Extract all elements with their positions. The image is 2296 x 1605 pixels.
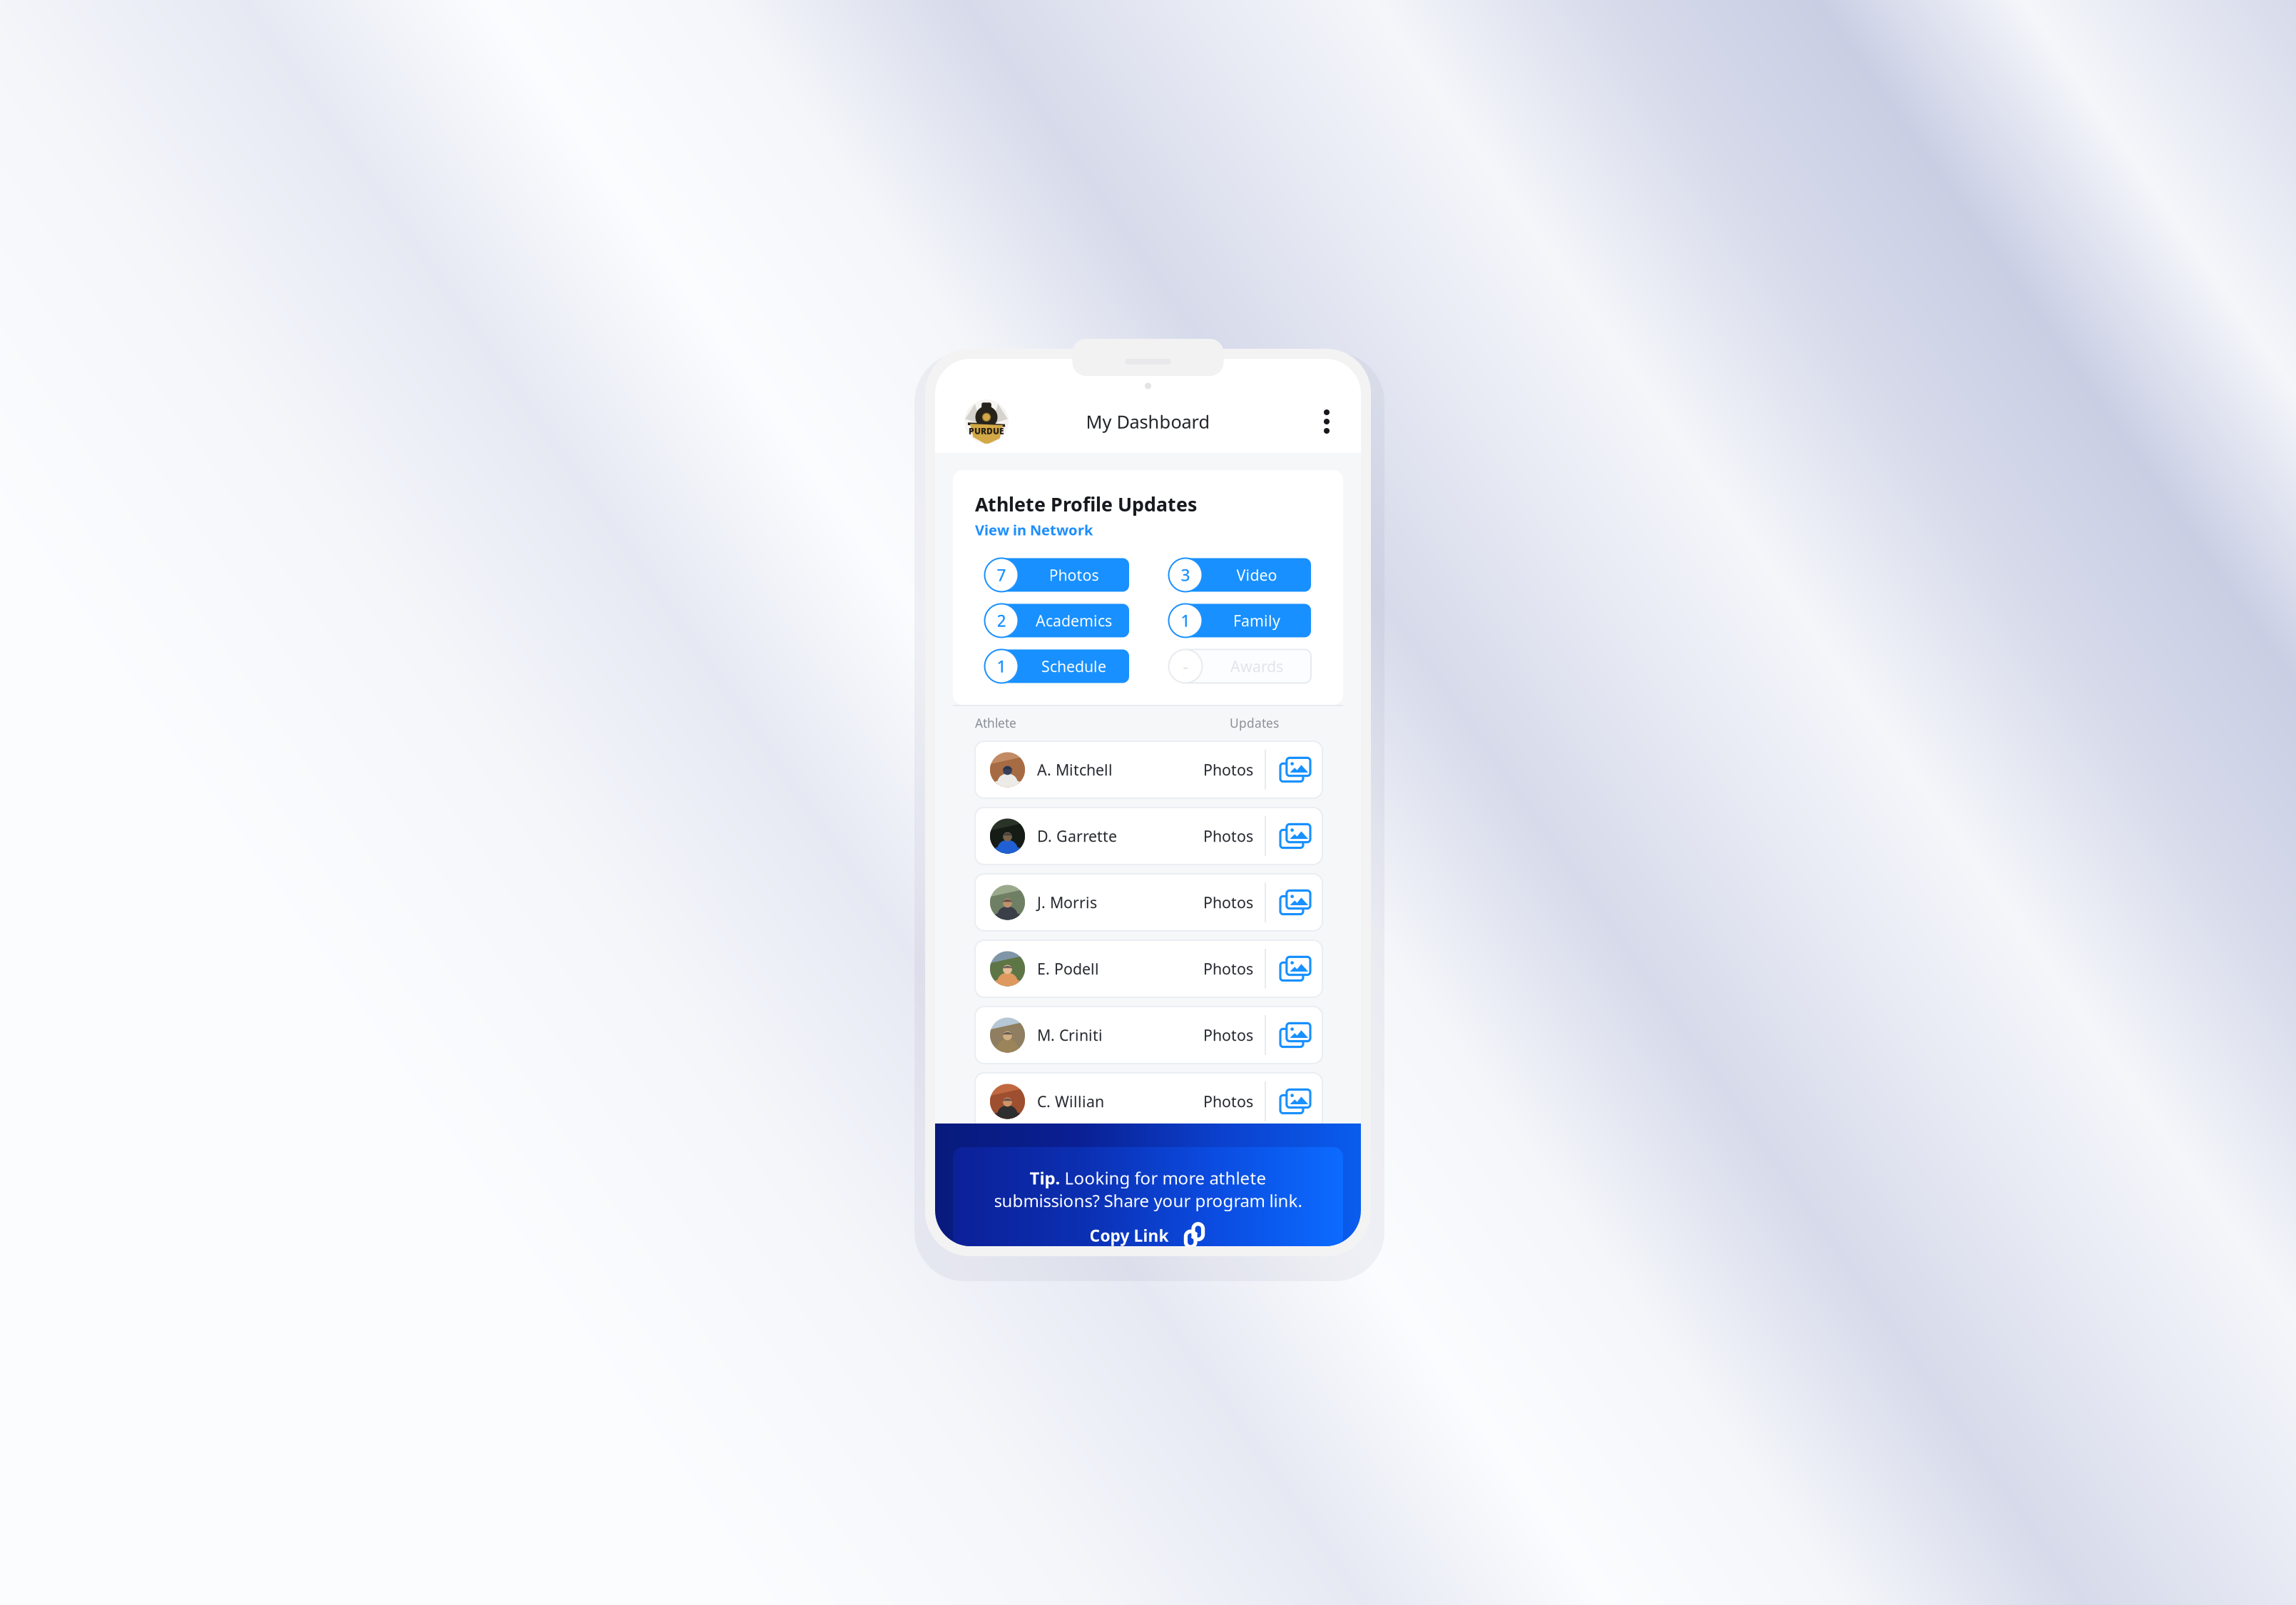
staticText: submissions? Share your program link. <box>994 1189 1302 1212</box>
staticText: Photos <box>1203 959 1253 979</box>
staticText: Schedule <box>1041 656 1106 676</box>
staticText: Tip. Looking for more athlete <box>1030 1166 1266 1189</box>
button[interactable]: Schedule <box>984 649 1129 683</box>
staticText: Video <box>1236 565 1277 585</box>
button[interactable]: J. Morris <box>975 874 1322 931</box>
staticText: 3 <box>1181 564 1190 586</box>
staticText: Awards <box>1230 656 1283 676</box>
staticText: Athlete <box>975 715 1016 731</box>
staticText: Updates <box>1230 715 1279 731</box>
staticText: Photos <box>1203 826 1253 846</box>
staticText: M. Criniti <box>1037 1025 1103 1045</box>
staticText: Photos <box>1203 892 1253 912</box>
staticText: J. Morris <box>1037 892 1097 912</box>
staticText: 7 <box>997 564 1006 586</box>
staticText: Copy Link <box>1090 1225 1169 1246</box>
staticText: View in Network <box>975 520 1093 539</box>
staticText: - <box>1183 655 1188 677</box>
button[interactable]: Awards <box>1168 649 1311 683</box>
staticText: Photos <box>1203 1091 1253 1111</box>
staticText: E. Podell <box>1037 959 1099 979</box>
button[interactable]: View in Network <box>975 520 1093 539</box>
button[interactable]: A. Mitchell <box>975 741 1322 798</box>
button[interactable]: Purdue <box>964 399 1009 444</box>
button[interactable]: M. Criniti <box>975 1007 1322 1064</box>
button[interactable]: C. Willian <box>975 1073 1322 1130</box>
staticText: C. Willian <box>1037 1091 1104 1111</box>
staticText: A. Mitchell <box>1037 760 1113 780</box>
staticText: Photos <box>1203 1025 1253 1045</box>
staticText: 1 <box>1181 610 1190 631</box>
button[interactable]: Academics <box>984 603 1129 638</box>
button[interactable]: E. Podell <box>975 940 1322 997</box>
staticText: D. Garrette <box>1037 826 1117 846</box>
staticText: Photos <box>1049 565 1099 585</box>
staticText: Family <box>1233 610 1280 631</box>
button[interactable]: More options <box>1315 404 1339 439</box>
button[interactable]: Family <box>1168 603 1311 638</box>
staticText: Athlete Profile Updates <box>975 491 1197 517</box>
button[interactable]: D. Garrette <box>975 807 1322 865</box>
staticText: PURDUE <box>969 425 1004 437</box>
staticText: 1 <box>997 655 1006 677</box>
button[interactable]: Video <box>1168 558 1311 592</box>
button[interactable]: Photos <box>984 558 1129 592</box>
staticText: Academics <box>1036 610 1112 631</box>
staticText: My Dashboard <box>1086 410 1210 434</box>
staticText: Photos <box>1203 760 1253 780</box>
staticText: 2 <box>997 610 1006 631</box>
button[interactable]: Tip. Looking for more athlete <box>935 1123 1361 1246</box>
